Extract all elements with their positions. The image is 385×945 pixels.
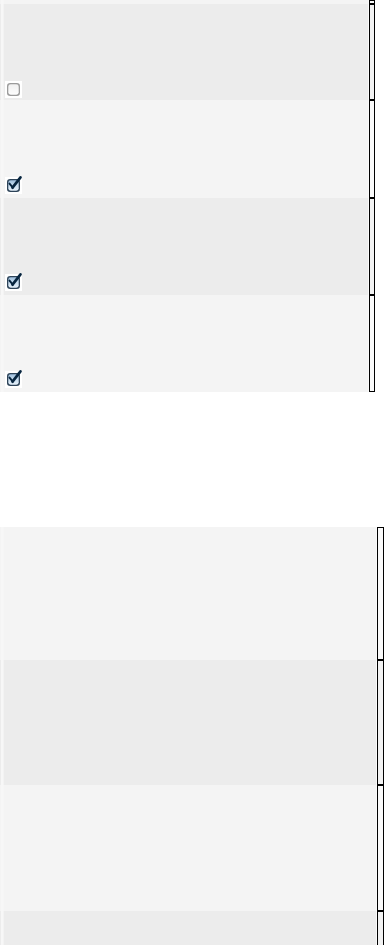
button[interactable]: Row 6 xyxy=(0,660,385,785)
button[interactable]: Row 8 xyxy=(0,911,385,945)
button[interactable]: Row 7 xyxy=(0,785,385,911)
button[interactable]: Row 2 xyxy=(0,100,385,198)
button[interactable]: Row 3 xyxy=(0,198,385,295)
button[interactable]: Checkbox, checked xyxy=(5,177,23,195)
button[interactable]: Checkbox, unchecked xyxy=(5,81,23,99)
button[interactable]: Checkbox, checked xyxy=(5,274,23,292)
button[interactable]: Row 5 xyxy=(0,527,385,660)
button[interactable]: Row 1 xyxy=(0,4,385,100)
button[interactable]: Checkbox, checked xyxy=(5,371,23,389)
button[interactable]: Row 4 xyxy=(0,295,385,392)
button[interactable]: Row, partially scrolled off xyxy=(0,0,385,4)
